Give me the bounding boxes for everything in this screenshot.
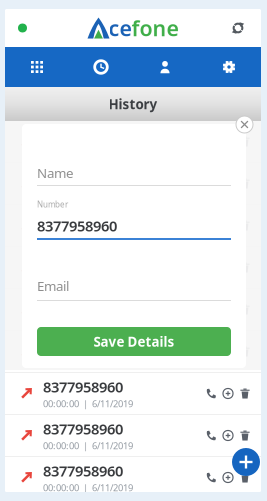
button[interactable]: 8377958960 <box>5 205 261 246</box>
staticText: 8377958960 <box>37 216 117 235</box>
staticText: 00:00:00 | 6/11/2019 <box>43 271 133 284</box>
staticText: Email <box>37 277 69 295</box>
staticText: Number <box>37 199 68 210</box>
staticText: 8377958960 <box>43 209 123 229</box>
staticText: History <box>108 95 157 113</box>
staticText: 8377958960 <box>43 377 123 397</box>
staticText: 00:00:00 | 6/11/2019 <box>43 397 133 410</box>
button[interactable]: 8377958960 <box>5 415 261 456</box>
staticText: Name <box>37 164 74 182</box>
button[interactable]: Contacts <box>133 47 197 87</box>
button[interactable]: Refresh <box>224 14 252 42</box>
button[interactable]: New call <box>232 448 260 476</box>
button[interactable]: 8377958960 <box>5 331 261 372</box>
staticText: fone <box>131 14 178 42</box>
staticText: 00:00:00 | 6/11/2019 <box>43 481 133 494</box>
button[interactable]: 8377958960 <box>5 373 261 414</box>
button[interactable]: History <box>69 47 133 87</box>
staticText: 00:00:00 | 6/11/2019 <box>43 439 133 452</box>
button[interactable]: 8377958960 <box>5 121 261 162</box>
staticText: Save Details <box>93 333 174 350</box>
staticText: 8377958960 <box>43 335 123 355</box>
button[interactable]: 8377958960 <box>5 247 261 288</box>
button[interactable]: Dialpad <box>5 47 69 87</box>
staticText: 00:00:00 | 6/11/2019 <box>43 229 133 242</box>
button[interactable]: 8377958960 <box>5 163 261 204</box>
button[interactable]: 8377958960 <box>5 457 261 498</box>
button[interactable]: Settings <box>197 47 261 87</box>
staticText: 8377958960 <box>43 461 123 481</box>
button[interactable]: 8377958960 <box>5 289 261 330</box>
button[interactable]: Close <box>236 116 253 133</box>
staticText: 8377958960 <box>43 167 123 187</box>
button[interactable]: Save Details <box>37 327 231 356</box>
staticText: ce <box>108 14 131 42</box>
staticText: 8377958960 <box>43 419 123 439</box>
staticText: 8377958960 <box>43 293 123 313</box>
